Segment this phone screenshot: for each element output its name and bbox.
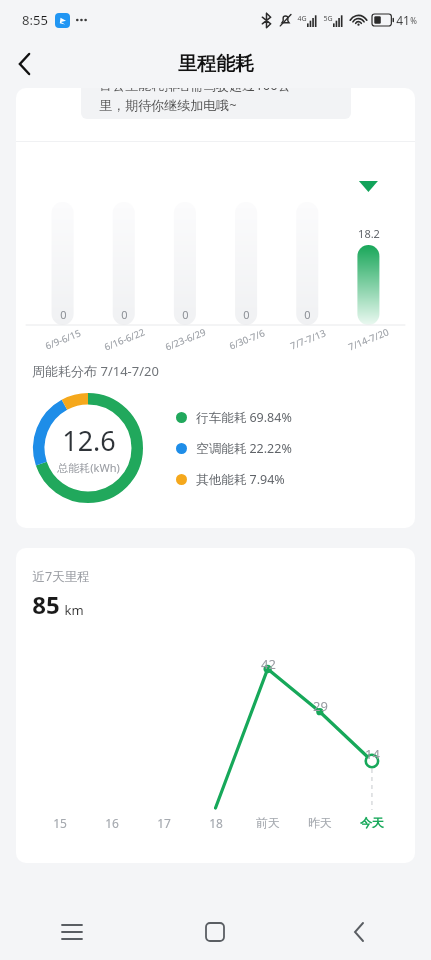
staticText: 6/16-6/22 bbox=[102, 325, 147, 354]
staticText: 昨天 bbox=[308, 815, 332, 830]
button[interactable]: Back bbox=[0, 40, 48, 88]
staticText: 其他能耗 7.94% bbox=[196, 471, 285, 488]
staticText: 7/14-7/20 bbox=[346, 325, 391, 354]
staticText: 百公里能耗排名需驾驶超过100公 bbox=[99, 88, 291, 94]
staticText: 周能耗分布 7/14-7/20 bbox=[32, 362, 159, 380]
staticText: 17 bbox=[157, 815, 171, 831]
button[interactable]: Recent apps bbox=[0, 904, 143, 960]
staticText: 5G bbox=[323, 14, 333, 24]
staticText: 6/23-6/29 bbox=[163, 325, 208, 354]
staticText: 85 bbox=[32, 588, 60, 621]
staticText: 8:55 bbox=[22, 11, 48, 29]
staticText: 0 bbox=[121, 307, 128, 322]
staticText: 42 bbox=[261, 655, 276, 673]
staticText: 前天 bbox=[256, 815, 280, 830]
staticText: 总能耗(kWh) bbox=[57, 460, 120, 475]
staticText: 18.2 bbox=[358, 226, 380, 241]
staticText: 0 bbox=[182, 307, 189, 322]
button[interactable]: Home bbox=[143, 904, 287, 960]
staticText: 12.6 bbox=[62, 422, 116, 459]
staticText: 0 bbox=[60, 307, 67, 322]
staticText: 0 bbox=[243, 307, 250, 322]
staticText: 里，期待你继续加电哦~ bbox=[99, 96, 237, 114]
staticText: 14 bbox=[365, 745, 380, 763]
staticText: 7/7-7/13 bbox=[288, 326, 328, 353]
staticText: 16 bbox=[105, 815, 119, 831]
staticText: 6/30-7/6 bbox=[227, 326, 267, 353]
staticText: 空调能耗 22.22% bbox=[196, 440, 292, 457]
button[interactable]: Back bbox=[287, 904, 431, 960]
staticText: 4G bbox=[297, 14, 307, 24]
staticText: 里程能耗 bbox=[178, 52, 254, 76]
staticText: 今天 bbox=[360, 815, 384, 830]
staticText: 6/9-6/15 bbox=[43, 326, 83, 353]
staticText: km bbox=[64, 601, 84, 619]
staticText: 41 bbox=[396, 12, 410, 28]
staticText: 18 bbox=[209, 815, 223, 831]
staticText: % bbox=[410, 15, 417, 26]
staticText: 近7天里程 bbox=[32, 568, 90, 585]
staticText: 15 bbox=[53, 815, 67, 831]
staticText: 0 bbox=[304, 307, 311, 322]
staticText: 29 bbox=[313, 697, 328, 715]
staticText: 行车能耗 69.84% bbox=[196, 409, 292, 426]
